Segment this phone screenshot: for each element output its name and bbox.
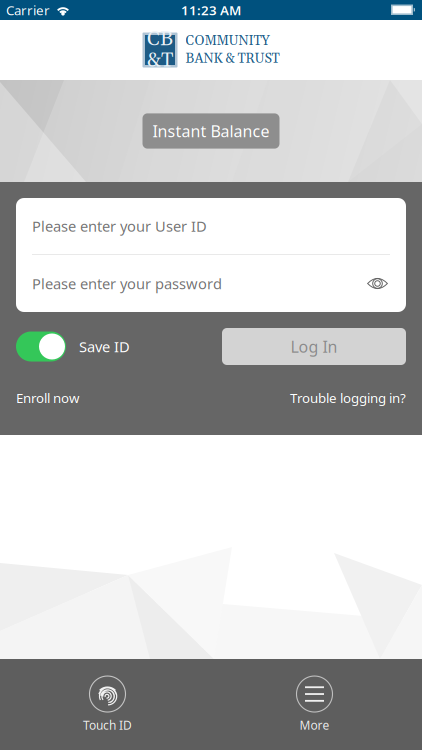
staticText: BANK & TRUST — [185, 50, 279, 67]
button[interactable]: Instant Balance — [142, 113, 279, 149]
button[interactable]: Touch ID — [4, 659, 211, 750]
staticText: Enroll now — [16, 389, 79, 407]
staticText: Log In — [290, 336, 337, 357]
staticText: Instant Balance — [152, 120, 269, 142]
staticText: Touch ID — [83, 717, 132, 733]
button[interactable]: Save ID — [16, 328, 130, 365]
staticText: Please enter your User ID — [32, 216, 207, 236]
button[interactable]: Trouble logging in? — [290, 389, 406, 407]
staticText: 11:23 AM — [181, 1, 241, 19]
button[interactable]: Log In — [222, 328, 406, 365]
staticText: Trouble logging in? — [290, 389, 406, 407]
staticText: &T — [147, 48, 173, 73]
staticText: COMMUNITY — [185, 33, 269, 49]
staticText: Please enter your password — [32, 274, 222, 293]
button[interactable]: Enroll now — [16, 389, 79, 407]
staticText: CB — [147, 27, 173, 52]
button[interactable]: More — [211, 659, 418, 750]
button[interactable]: Show password — [365, 274, 390, 293]
staticText: Carrier — [6, 1, 50, 19]
staticText: Save ID — [79, 337, 130, 356]
staticText: More — [299, 717, 329, 733]
